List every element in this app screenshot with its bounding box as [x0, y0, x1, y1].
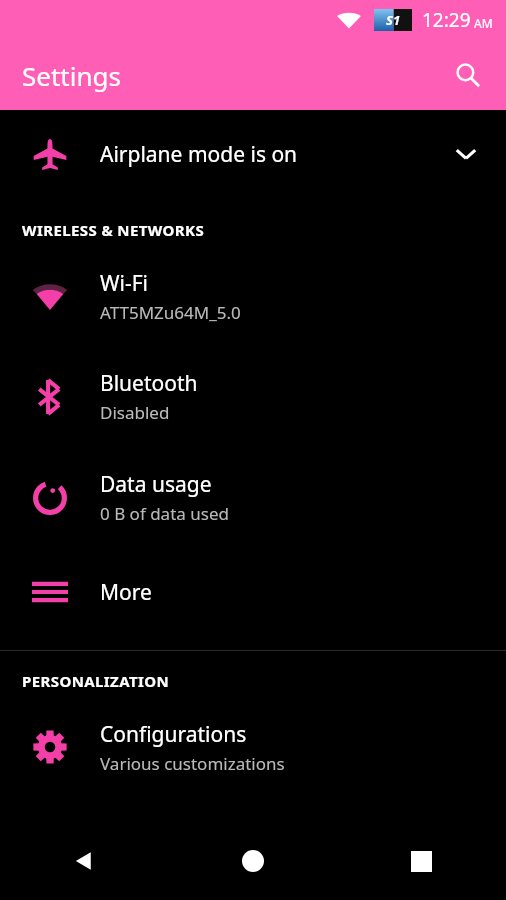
staticText: Disabled: [100, 401, 170, 424]
staticText: Bluetooth: [100, 369, 198, 398]
staticText: S1: [386, 11, 401, 29]
button[interactable]: Bluetooth: [0, 346, 506, 447]
staticText: WIRELESS & NETWORKS: [22, 220, 205, 240]
button[interactable]: Search: [444, 51, 492, 99]
staticText: More: [100, 578, 152, 607]
staticText: PERSONALIZATION: [22, 671, 170, 691]
staticText: Configurations: [100, 720, 247, 749]
button[interactable]: Back: [0, 822, 168, 900]
staticText: Various customizations: [100, 752, 285, 775]
staticText: 0 B of data used: [100, 502, 229, 525]
staticText: Airplane mode is on: [100, 140, 448, 169]
button[interactable]: Configurations: [0, 697, 506, 797]
button[interactable]: Wi-Fi: [0, 246, 506, 346]
staticText: Settings: [22, 58, 121, 93]
staticText: 12:29: [422, 7, 471, 33]
staticText: ATT5MZu64M_5.0: [100, 301, 241, 324]
staticText: Wi-Fi: [100, 269, 149, 298]
button[interactable]: Recent apps: [337, 822, 506, 900]
staticText: Data usage: [100, 470, 212, 499]
staticText: AM: [474, 15, 493, 31]
button[interactable]: More: [0, 548, 506, 636]
button[interactable]: Airplane mode is on: [0, 110, 506, 198]
button[interactable]: Home: [168, 822, 337, 900]
button[interactable]: Data usage: [0, 447, 506, 548]
